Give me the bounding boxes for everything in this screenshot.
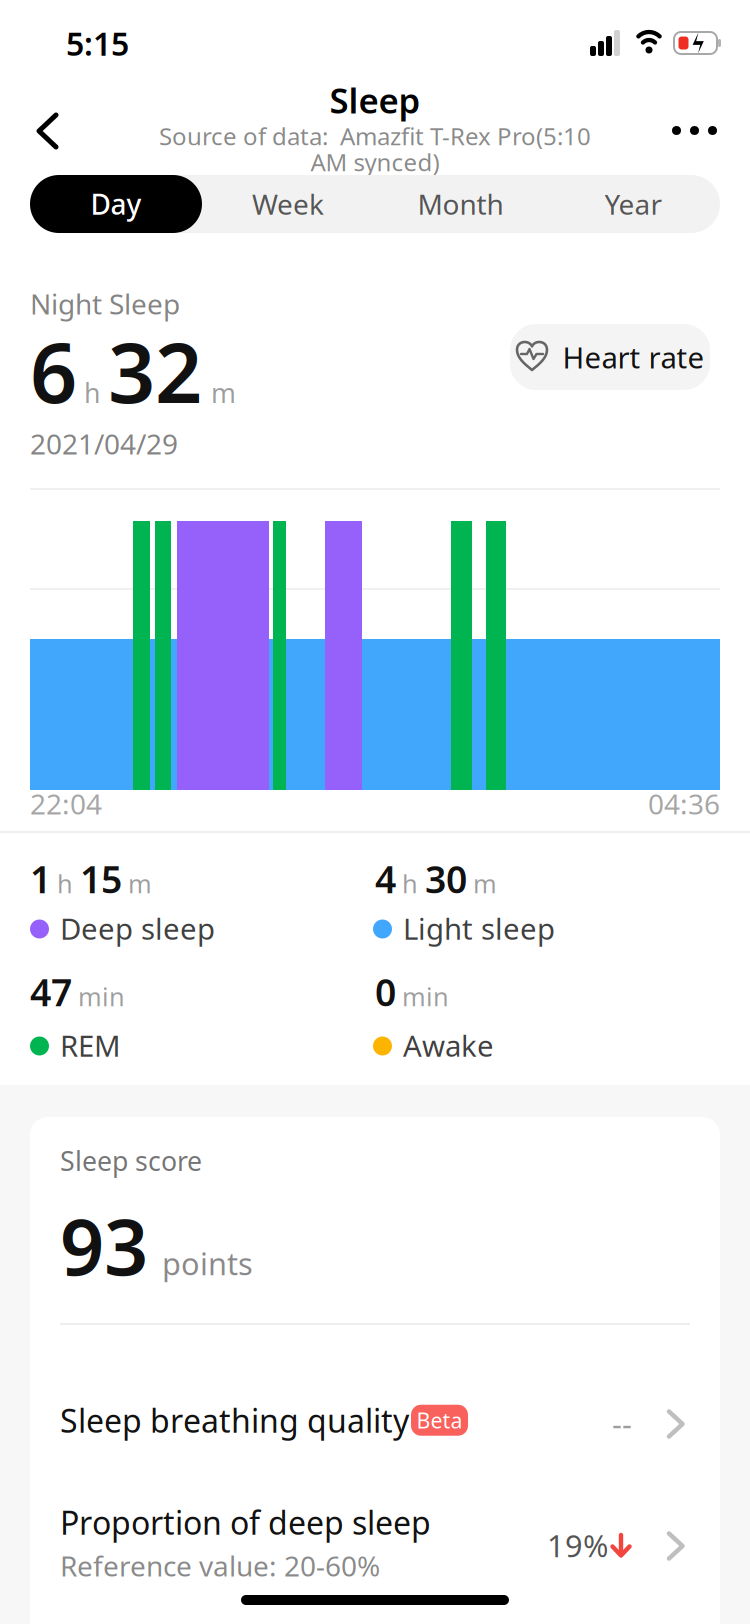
staticText: h [84, 375, 100, 410]
staticText: REM [60, 1026, 121, 1065]
staticText: Deep sleep [60, 909, 215, 948]
staticText: Day [90, 185, 141, 223]
staticText: m [128, 867, 152, 900]
staticText: 30 [425, 854, 467, 904]
staticText: 22:04 [30, 785, 102, 822]
staticText: -- [612, 1403, 632, 1444]
button[interactable]: Sleep breathing quality [30, 1371, 720, 1471]
staticText: 4 [375, 854, 396, 904]
staticText: Beta [416, 1406, 462, 1434]
staticText: 2021/04/29 [30, 425, 178, 462]
staticText: m [211, 375, 236, 410]
staticText: Sleep [329, 77, 420, 123]
staticText: 15 [80, 854, 122, 904]
staticText: Light sleep [403, 909, 555, 948]
staticText: 0 [375, 967, 396, 1017]
button[interactable]: Day [30, 175, 202, 233]
staticText: 5:15 [66, 22, 129, 64]
staticText: Awake [403, 1026, 494, 1065]
staticText: Heart rate [562, 337, 704, 376]
button[interactable]: Month [374, 175, 547, 233]
staticText: 19% [547, 1525, 608, 1566]
button[interactable]: More [658, 112, 731, 149]
staticText: min [402, 980, 449, 1013]
staticText: Source of data: Amazfit T-Rex Pro(5:10 [159, 120, 591, 152]
staticText: AM synced) [310, 146, 439, 178]
staticText: min [78, 980, 125, 1013]
staticText: 93 [60, 1194, 148, 1297]
staticText: m [473, 867, 497, 900]
staticText: Reference value: 20-60% [60, 1547, 380, 1584]
staticText: Sleep breathing quality [60, 1399, 409, 1441]
staticText: Year [604, 185, 662, 223]
button[interactable]: Year [547, 175, 720, 233]
staticText: 1 [30, 854, 51, 904]
staticText: 04:36 [648, 785, 720, 822]
staticText: 6 [30, 316, 77, 426]
staticText: 47 [30, 967, 72, 1017]
staticText: h [57, 867, 73, 900]
staticText: Proportion of deep sleep [60, 1501, 431, 1543]
staticText: Sleep score [60, 1143, 202, 1178]
staticText: Night Sleep [30, 285, 180, 322]
staticText: h [402, 867, 418, 900]
button[interactable]: Week [202, 175, 374, 233]
staticText: Week [252, 185, 324, 223]
button[interactable]: Back [0, 96, 89, 166]
staticText: Month [417, 185, 503, 223]
staticText: 32 [108, 316, 202, 426]
staticText: points [162, 1243, 253, 1284]
button[interactable]: Proportion of deep sleep [30, 1477, 720, 1607]
button[interactable]: Heart rate [510, 324, 710, 390]
